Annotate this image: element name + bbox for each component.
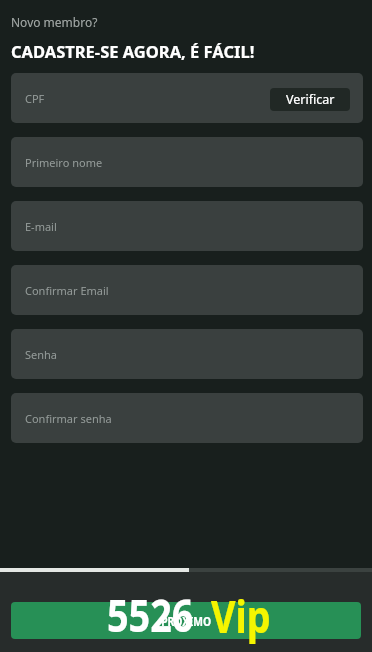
staticText: 5526 — [107, 584, 193, 645]
staticText: E-mail — [25, 219, 57, 234]
staticText: Vip — [211, 585, 271, 646]
button[interactable]: E-mail — [11, 201, 363, 251]
button[interactable]: Confirmar senha — [11, 393, 363, 443]
button[interactable]: Primeiro nome — [11, 137, 363, 187]
staticText: Verificar — [286, 91, 335, 108]
button[interactable]: Confirmar Email — [11, 265, 363, 315]
staticText: Primeiro nome — [25, 155, 103, 170]
staticText: PRÓXIMO — [161, 613, 212, 629]
staticText: CADASTRE-SE AGORA, É FÁCIL! — [11, 40, 255, 62]
button[interactable]: Senha — [11, 329, 363, 379]
staticText: Novo membro? — [11, 14, 98, 30]
button[interactable]: Verificar — [270, 88, 350, 111]
staticText: Confirmar senha — [25, 411, 112, 426]
staticText: Senha — [25, 347, 58, 362]
button[interactable]: CPF — [11, 73, 363, 123]
button[interactable]: PRÓXIMO — [11, 602, 361, 639]
staticText: Confirmar Email — [25, 283, 109, 298]
staticText: CPF — [25, 91, 45, 106]
